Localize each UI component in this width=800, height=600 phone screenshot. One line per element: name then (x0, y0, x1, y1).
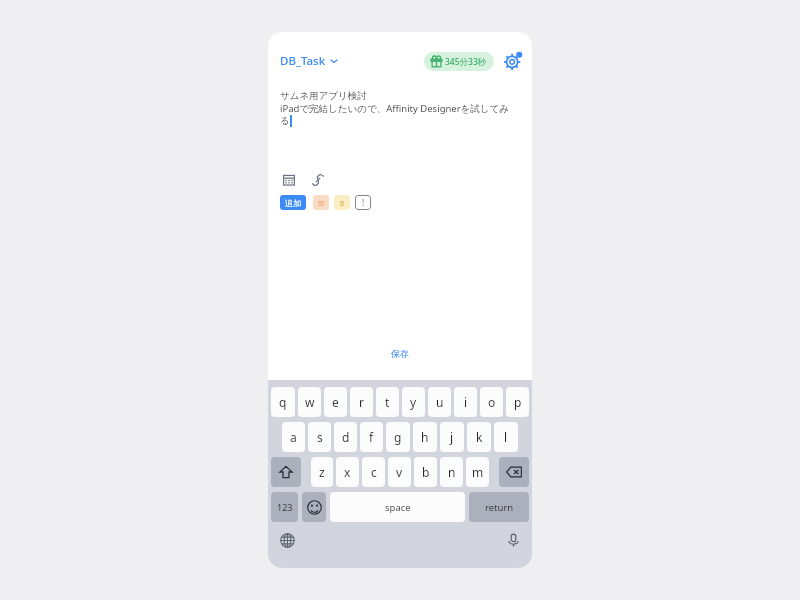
staticText: c (371, 464, 377, 480)
button[interactable]: !!! (313, 195, 329, 210)
staticText: a (290, 429, 297, 445)
button[interactable]: v (388, 457, 411, 487)
staticText: return (485, 501, 514, 514)
button[interactable]: z (311, 457, 333, 487)
staticText: y (410, 394, 417, 410)
staticText: j (450, 429, 454, 445)
staticText: d (342, 429, 350, 445)
staticText: る (280, 115, 290, 127)
button[interactable]: Settings (502, 50, 524, 72)
button[interactable]: return (469, 492, 529, 522)
staticText: 保存 (391, 348, 409, 359)
button[interactable]: a (282, 422, 305, 452)
button[interactable]: 保存 (377, 343, 423, 364)
button[interactable]: Delete (499, 457, 529, 487)
staticText: iPadで完結したいので、Affinity Designerを試してみ (280, 102, 510, 115)
button[interactable]: o (480, 387, 503, 417)
staticText: m (472, 464, 484, 480)
staticText: s (317, 429, 323, 445)
button[interactable]: s (308, 422, 331, 452)
staticText: DB_Task (280, 53, 326, 69)
staticText: 123 (277, 501, 293, 513)
button[interactable]: x (336, 457, 359, 487)
staticText: w (305, 394, 315, 410)
button[interactable]: space (330, 492, 465, 522)
staticText: g (394, 429, 402, 445)
staticText: u (436, 394, 444, 410)
button[interactable]: f (360, 422, 383, 452)
staticText: ! (362, 197, 365, 208)
button[interactable]: q (271, 387, 295, 417)
button[interactable]: b (414, 457, 437, 487)
button[interactable]: Link (309, 171, 327, 189)
staticText: l (504, 429, 508, 445)
button[interactable]: Emoji (302, 492, 326, 522)
button[interactable]: c (362, 457, 385, 487)
staticText: space (385, 501, 411, 514)
button[interactable]: k (467, 422, 491, 452)
button[interactable]: n (440, 457, 463, 487)
staticText: 追加 (285, 198, 301, 208)
staticText: h (421, 429, 429, 445)
button[interactable]: j (440, 422, 464, 452)
button[interactable]: ! (355, 195, 371, 210)
staticText: n (448, 464, 456, 480)
button[interactable]: DB_Task (280, 49, 338, 73)
staticText: !!! (318, 198, 325, 208)
button[interactable]: 345分33秒 (424, 52, 494, 71)
button[interactable]: y (402, 387, 425, 417)
staticText: t (385, 394, 390, 410)
button[interactable]: Date (280, 171, 298, 189)
button[interactable]: w (298, 387, 321, 417)
staticText: f (369, 429, 374, 445)
button[interactable]: 123 (271, 492, 298, 522)
staticText: i (464, 394, 468, 410)
button[interactable]: !! (334, 195, 350, 210)
staticText: v (396, 464, 403, 480)
button[interactable]: p (506, 387, 529, 417)
button[interactable]: Dictation (502, 529, 524, 551)
button[interactable]: h (413, 422, 437, 452)
button[interactable]: m (466, 457, 489, 487)
staticText: e (332, 394, 339, 410)
staticText: 345分33秒 (445, 56, 487, 68)
staticText: k (476, 429, 483, 445)
staticText: サムネ用アプリ検討 (280, 90, 367, 102)
button[interactable]: g (386, 422, 410, 452)
button[interactable]: u (428, 387, 451, 417)
button[interactable]: d (334, 422, 357, 452)
staticText: z (319, 464, 325, 480)
staticText: r (359, 394, 364, 410)
button[interactable]: e (324, 387, 347, 417)
staticText: x (344, 464, 351, 480)
button[interactable]: i (454, 387, 477, 417)
button[interactable]: Change keyboard (276, 529, 298, 551)
button[interactable]: t (376, 387, 399, 417)
staticText: q (279, 394, 287, 410)
staticText: b (422, 464, 430, 480)
button[interactable]: l (494, 422, 518, 452)
staticText: p (514, 394, 522, 410)
staticText: !! (340, 198, 345, 208)
button[interactable]: r (350, 387, 373, 417)
button[interactable]: Shift (271, 457, 301, 487)
staticText: o (488, 394, 496, 410)
button[interactable]: 追加 (280, 195, 306, 210)
